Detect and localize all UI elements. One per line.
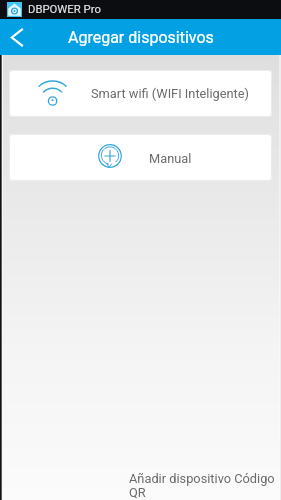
staticText: DBPOWER Pro — [28, 3, 101, 16]
staticText: Agregar dispositivos — [68, 28, 214, 47]
staticText: Smart wifi (WIFI Inteligente) — [91, 86, 250, 101]
staticText: Manual — [149, 151, 192, 166]
button[interactable]: Añadir dispositivo Código QR — [129, 471, 280, 500]
button[interactable]: Back — [0, 19, 34, 55]
button[interactable]: Manual — [9, 134, 272, 181]
button[interactable]: Smart wifi (WIFI Inteligente) — [9, 70, 272, 117]
